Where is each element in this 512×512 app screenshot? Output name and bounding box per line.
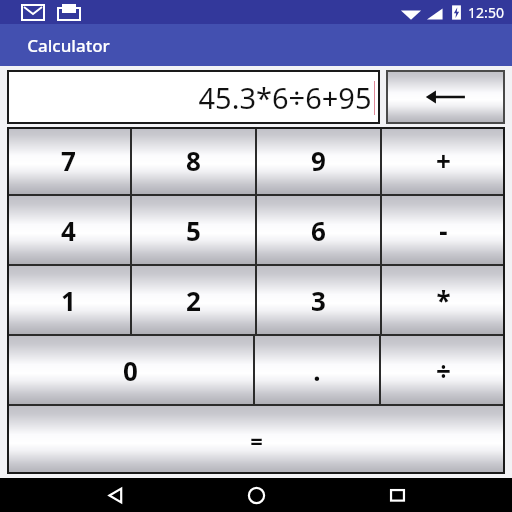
staticText: .: [313, 353, 321, 388]
staticText: 4: [61, 213, 76, 248]
staticText: 2: [186, 283, 201, 318]
button[interactable]: 8: [132, 127, 255, 194]
button[interactable]: 4: [7, 196, 130, 264]
staticText: +: [436, 143, 451, 178]
button[interactable]: +: [382, 127, 505, 194]
button[interactable]: Backspace: [386, 70, 505, 124]
staticText: ÷: [436, 353, 451, 388]
staticText: 6: [311, 213, 326, 248]
staticText: *: [436, 283, 451, 318]
staticText: 9: [311, 143, 326, 178]
button[interactable]: -: [382, 196, 505, 264]
staticText: 7: [61, 143, 76, 178]
button[interactable]: 2: [132, 266, 255, 334]
button[interactable]: ÷: [381, 336, 505, 404]
button[interactable]: .: [255, 336, 379, 404]
button[interactable]: =: [7, 406, 505, 474]
staticText: 3: [311, 283, 326, 318]
button[interactable]: Back: [89, 478, 141, 512]
button[interactable]: 45.3*6÷6+95: [7, 70, 380, 124]
button[interactable]: Recents: [371, 478, 423, 512]
button[interactable]: 0: [7, 336, 253, 404]
button[interactable]: 1: [7, 266, 130, 334]
staticText: =: [250, 425, 263, 455]
staticText: 0: [123, 353, 138, 388]
button[interactable]: 7: [7, 127, 130, 194]
button[interactable]: 5: [132, 196, 255, 264]
button[interactable]: Home: [230, 478, 282, 512]
staticText: 45.3*6÷6+95: [198, 78, 372, 117]
staticText: 8: [186, 143, 201, 178]
staticText: 1: [61, 283, 76, 318]
button[interactable]: 6: [257, 196, 380, 264]
staticText: -: [439, 213, 448, 248]
staticText: 12:50: [468, 3, 504, 22]
staticText: 5: [186, 213, 201, 248]
button[interactable]: 9: [257, 127, 380, 194]
staticText: Calculator: [27, 34, 110, 57]
button[interactable]: *: [382, 266, 505, 334]
button[interactable]: 3: [257, 266, 380, 334]
